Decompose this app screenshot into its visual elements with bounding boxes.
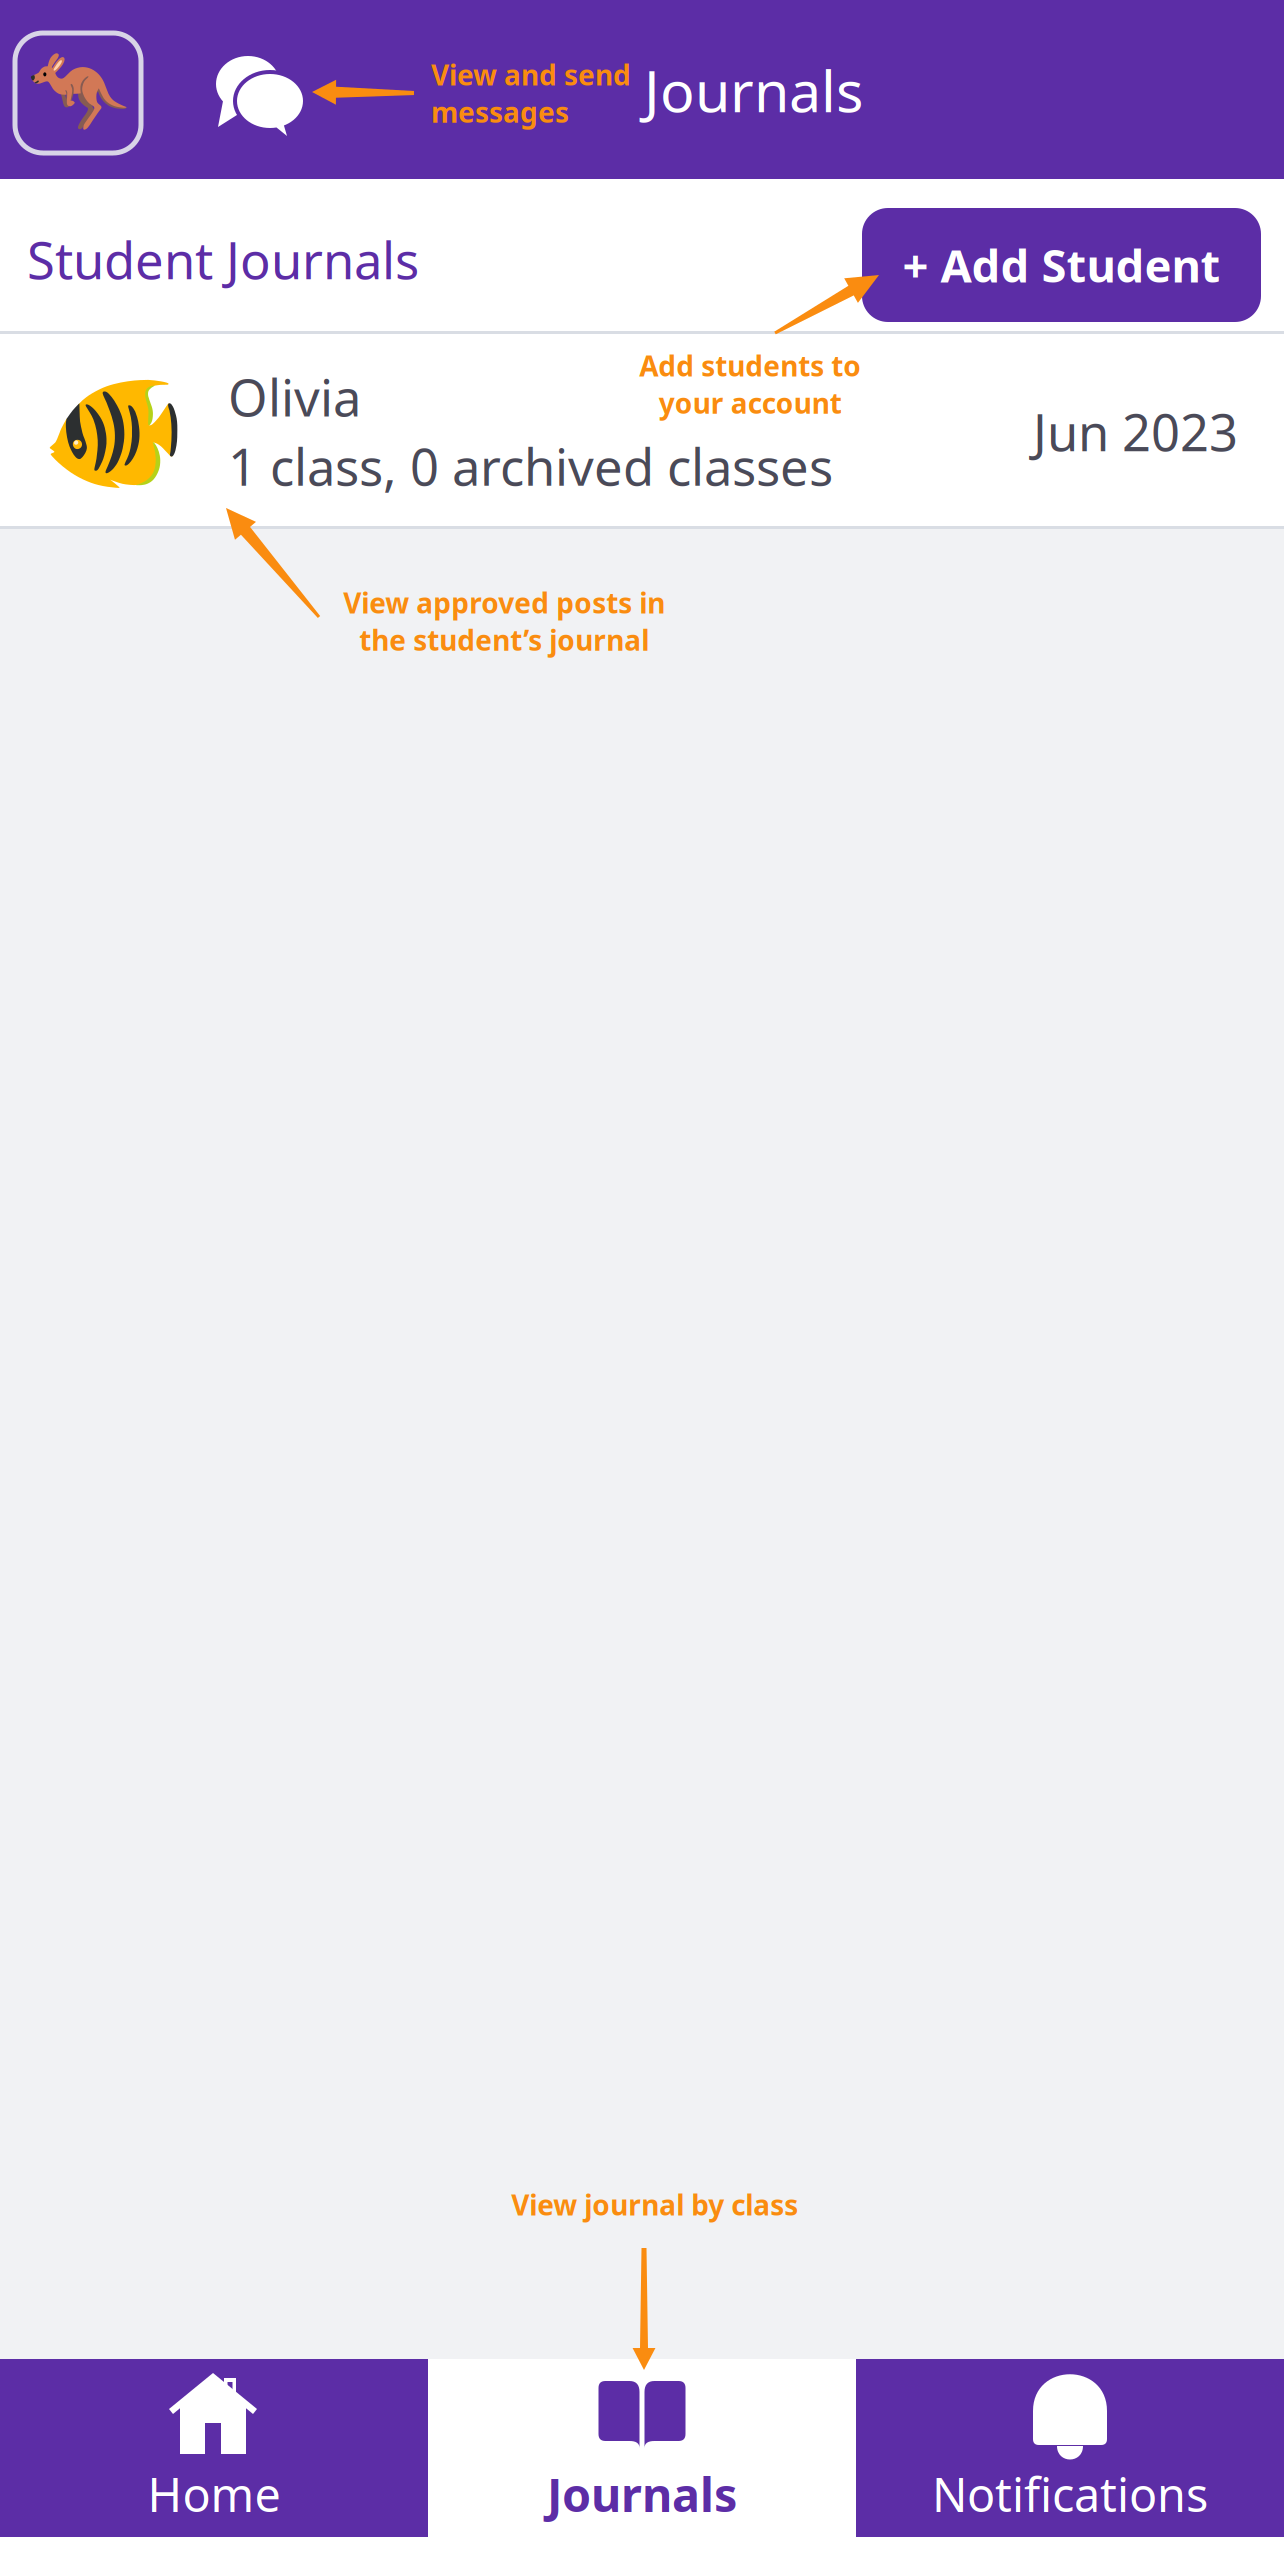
staticText: Student Journals [27,226,419,293]
button[interactable]: Messages [216,56,306,131]
button[interactable]: Profile [15,33,141,153]
staticText: Home [147,2463,280,2525]
staticText: Olivia [228,363,361,430]
staticText: Jun 2023 [1033,398,1238,465]
button[interactable]: Notifications [856,2359,1284,2537]
button[interactable]: Olivia, 1 class, 0 archived classes, Jun… [0,334,1284,529]
staticText: View approved posts in the student’s jou… [343,584,665,658]
staticText: 🦘 [26,46,129,140]
staticText: Journals [644,52,863,128]
button[interactable]: Home [0,2359,428,2537]
staticText: 1 class, 0 archived classes [228,432,833,500]
staticText: View and send messages [431,56,631,130]
staticText: Notifications [932,2463,1208,2525]
staticText: + Add Student [902,235,1220,295]
staticText: 🐠 [41,364,187,499]
staticText: View journal by class [511,2186,798,2223]
staticText: Journals [547,2463,737,2525]
button[interactable]: Journals [428,2359,856,2537]
button[interactable]: + Add Student [862,208,1261,322]
staticText: Add students to your account [639,347,861,421]
